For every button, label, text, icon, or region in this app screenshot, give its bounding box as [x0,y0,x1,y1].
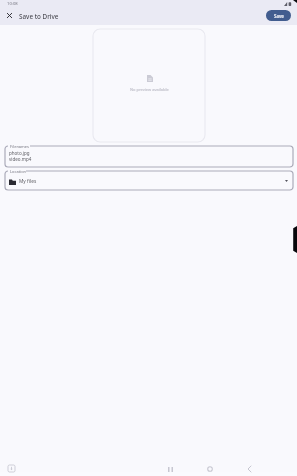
button[interactable]: Location [5,171,293,190]
staticText: 10:08 [7,1,18,7]
button[interactable]: Save [266,10,291,21]
staticText: Location [10,169,27,174]
staticText: My files [19,178,37,185]
button[interactable]: Home [204,463,216,475]
button[interactable]: Filenames [5,146,293,167]
button[interactable]: Hide keyboard [5,462,17,474]
staticText: Save [274,13,284,19]
button[interactable]: Back [243,463,255,475]
staticText: photo.jpg [9,150,30,156]
button[interactable]: Recent apps [164,463,176,475]
button[interactable]: Close [4,10,15,21]
staticText: Save to Drive [19,12,59,21]
staticText: Filenames [10,144,30,149]
staticText: No preview available [130,87,169,92]
staticText: video.mp4 [9,156,32,162]
